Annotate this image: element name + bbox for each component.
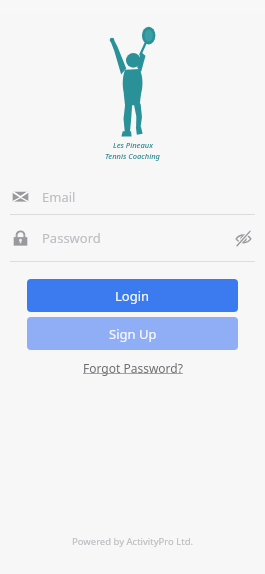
staticText: Forgot Password?: [83, 360, 183, 376]
staticText: Sign Up: [109, 325, 157, 343]
staticText: Email: [42, 188, 76, 206]
button[interactable]: Forgot Password?: [77, 358, 189, 378]
button[interactable]: Password: [0, 215, 265, 261]
staticText: Login: [115, 287, 150, 305]
staticText: Les Pineaux: [113, 140, 153, 150]
staticText: Powered by ActivityPro Ltd.: [72, 535, 194, 548]
button[interactable]: Login: [27, 279, 238, 312]
button[interactable]: Show password: [231, 226, 255, 250]
staticText: Password: [42, 229, 231, 247]
button[interactable]: Sign Up: [27, 317, 238, 350]
staticText: Tennis Coaching: [105, 151, 160, 161]
button[interactable]: Email: [0, 179, 265, 214]
